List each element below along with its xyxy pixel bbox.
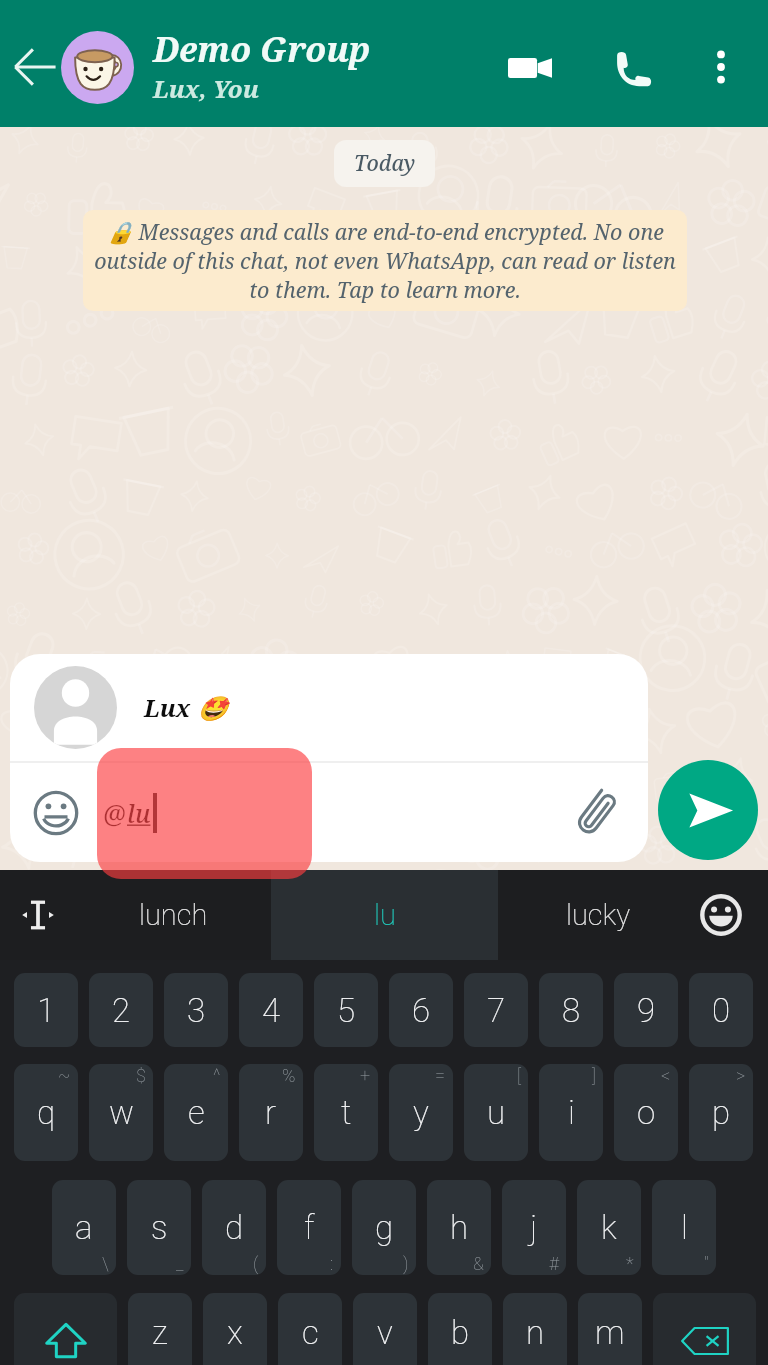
button[interactable]: Demo Group	[153, 26, 483, 105]
button[interactable]: Back	[9, 41, 61, 93]
button[interactable]: (	[202, 1180, 266, 1275]
staticText: #	[549, 1253, 559, 1274]
button[interactable]: Video call	[498, 36, 562, 100]
button[interactable]: Today	[334, 140, 435, 187]
button[interactable]: lunch	[76, 870, 271, 960]
staticText: $	[136, 1065, 146, 1086]
staticText: u	[487, 1093, 506, 1132]
button[interactable]: *	[577, 1180, 641, 1275]
button[interactable]: More options	[695, 41, 747, 93]
staticText: Lux, You	[153, 72, 259, 105]
staticText: &	[473, 1253, 484, 1274]
button[interactable]: [	[464, 1064, 528, 1161]
button[interactable]: 4	[239, 973, 303, 1047]
staticText: i	[568, 1093, 575, 1132]
staticText: *	[626, 1253, 634, 1274]
staticText: 1	[37, 991, 56, 1030]
staticText: 6	[412, 991, 431, 1030]
staticText: "	[704, 1253, 709, 1274]
staticText: w	[109, 1093, 134, 1132]
button[interactable]: 9	[614, 973, 678, 1047]
button[interactable]: 1	[14, 973, 78, 1047]
button[interactable]: >	[689, 1064, 753, 1161]
button[interactable]: 5	[314, 973, 378, 1047]
button[interactable]: 2	[89, 973, 153, 1047]
staticText: b	[451, 1313, 470, 1352]
button[interactable]: Send	[658, 760, 758, 860]
button[interactable]: =	[389, 1064, 453, 1161]
button[interactable]: ^	[164, 1064, 228, 1161]
staticText: Lux 🤩	[144, 691, 227, 724]
button[interactable]: )	[352, 1180, 416, 1275]
staticText: s	[151, 1208, 168, 1247]
button[interactable]: Emoji	[30, 787, 82, 839]
staticText: [	[517, 1065, 521, 1086]
staticText: lu	[127, 796, 151, 830]
button[interactable]: b	[428, 1293, 492, 1365]
button[interactable]: m	[578, 1293, 642, 1365]
staticText: p	[712, 1093, 731, 1132]
staticText: h	[450, 1208, 469, 1247]
button[interactable]: Move cursor	[0, 870, 76, 960]
staticText: )	[403, 1253, 409, 1274]
staticText: 5	[337, 991, 356, 1030]
button[interactable]: Voice call	[603, 38, 663, 98]
staticText: lunch	[139, 898, 208, 932]
staticText: @	[103, 796, 127, 830]
button[interactable]: v	[353, 1293, 417, 1365]
button[interactable]: 🔒 Messages and calls are end-to-end encr…	[83, 210, 687, 311]
staticText: (	[253, 1253, 259, 1274]
button[interactable]: Lux 🤩	[10, 654, 648, 761]
button[interactable]: $	[89, 1064, 153, 1161]
button[interactable]: <	[614, 1064, 678, 1161]
staticText: 🔒 Messages and calls are end-to-end encr…	[94, 217, 676, 304]
button[interactable]: lucky	[498, 870, 698, 960]
button[interactable]: %	[239, 1064, 303, 1161]
button[interactable]: c	[278, 1293, 342, 1365]
staticText: l	[681, 1208, 688, 1247]
button[interactable]: Shift	[14, 1293, 117, 1365]
button[interactable]: 8	[539, 973, 603, 1047]
button[interactable]: ]	[539, 1064, 603, 1161]
button[interactable]: _	[127, 1180, 191, 1275]
button[interactable]: &	[427, 1180, 491, 1275]
staticText: 7	[487, 991, 506, 1030]
button[interactable]: 7	[464, 973, 528, 1047]
button[interactable]: :	[277, 1180, 341, 1275]
staticText: %	[282, 1065, 296, 1086]
staticText: m	[595, 1313, 625, 1352]
button[interactable]: Backspace	[653, 1293, 756, 1365]
staticText: 9	[637, 991, 656, 1030]
staticText: _	[176, 1253, 184, 1274]
staticText: lucky	[566, 898, 631, 932]
staticText: 8	[562, 991, 581, 1030]
button[interactable]: +	[314, 1064, 378, 1161]
staticText: 4	[262, 991, 281, 1030]
staticText: v	[377, 1313, 393, 1352]
button[interactable]: Emoji keyboard	[698, 870, 768, 960]
staticText: o	[637, 1093, 656, 1132]
button[interactable]: \	[52, 1180, 116, 1275]
button[interactable]: 6	[389, 973, 453, 1047]
staticText: c	[302, 1313, 319, 1352]
button[interactable]: x	[203, 1293, 267, 1365]
button[interactable]: lu	[271, 870, 498, 960]
button[interactable]: z	[128, 1293, 192, 1365]
staticText: a	[75, 1208, 93, 1247]
button[interactable]: 3	[164, 973, 228, 1047]
staticText: ~	[58, 1065, 71, 1086]
button[interactable]: ~	[14, 1064, 78, 1161]
button[interactable]: Attach	[568, 785, 624, 841]
staticText: t	[341, 1093, 352, 1132]
button[interactable]: Group photo	[61, 31, 134, 104]
button[interactable]: n	[503, 1293, 567, 1365]
staticText: g	[375, 1208, 394, 1247]
staticText: =	[435, 1065, 446, 1086]
staticText: 0	[712, 991, 731, 1030]
button[interactable]: #	[502, 1180, 566, 1275]
button[interactable]: "	[652, 1180, 716, 1275]
staticText: 2	[112, 991, 131, 1030]
button[interactable]: 0	[689, 973, 753, 1047]
staticText: 3	[187, 991, 206, 1030]
staticText: z	[152, 1313, 168, 1352]
